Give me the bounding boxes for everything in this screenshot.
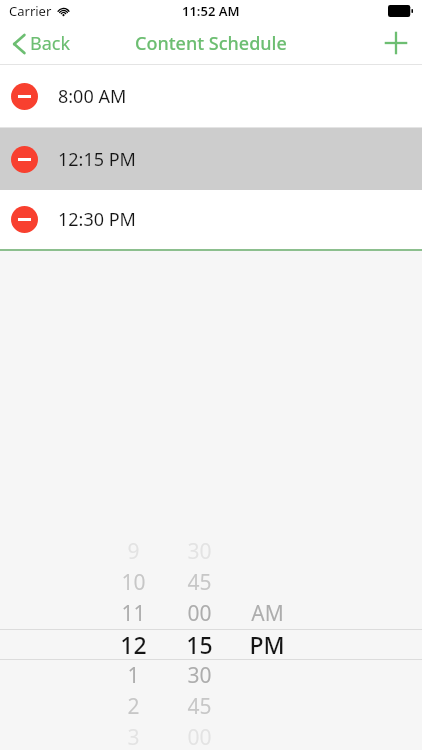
staticText: 12:30 PM — [58, 207, 136, 232]
staticText: 3 — [127, 723, 140, 750]
staticText: Carrier — [9, 2, 52, 20]
staticText: Content Schedule — [135, 31, 287, 56]
button[interactable]: Delete time — [0, 190, 422, 249]
staticText: 12 — [120, 629, 147, 660]
staticText: 00 — [187, 599, 212, 628]
button[interactable]: Delete time — [11, 83, 38, 110]
button[interactable]: Back — [0, 24, 85, 63]
staticText: 11 — [121, 599, 146, 628]
button[interactable]: Delete time — [11, 146, 38, 173]
staticText: 11:52 AM — [182, 2, 240, 20]
staticText: PM — [249, 629, 285, 660]
staticText: 8:00 AM — [58, 84, 127, 109]
button[interactable]: Delete time — [0, 128, 422, 190]
staticText: 45 — [187, 568, 212, 597]
staticText: 12:15 PM — [58, 147, 136, 172]
staticText: 45 — [187, 692, 212, 721]
button[interactable]: Add schedule — [370, 23, 422, 63]
button[interactable]: Delete time — [11, 206, 38, 233]
staticText: 00 — [187, 723, 212, 750]
staticText: 9 — [127, 537, 140, 566]
staticText: 1 — [127, 661, 140, 690]
staticText: 30 — [187, 537, 212, 566]
staticText: Back — [30, 31, 71, 56]
button[interactable]: Delete time — [0, 65, 422, 127]
staticText: 10 — [121, 568, 146, 597]
staticText: 2 — [127, 692, 140, 721]
staticText: AM — [251, 599, 284, 628]
staticText: 30 — [187, 661, 212, 690]
staticText: 15 — [186, 629, 213, 660]
